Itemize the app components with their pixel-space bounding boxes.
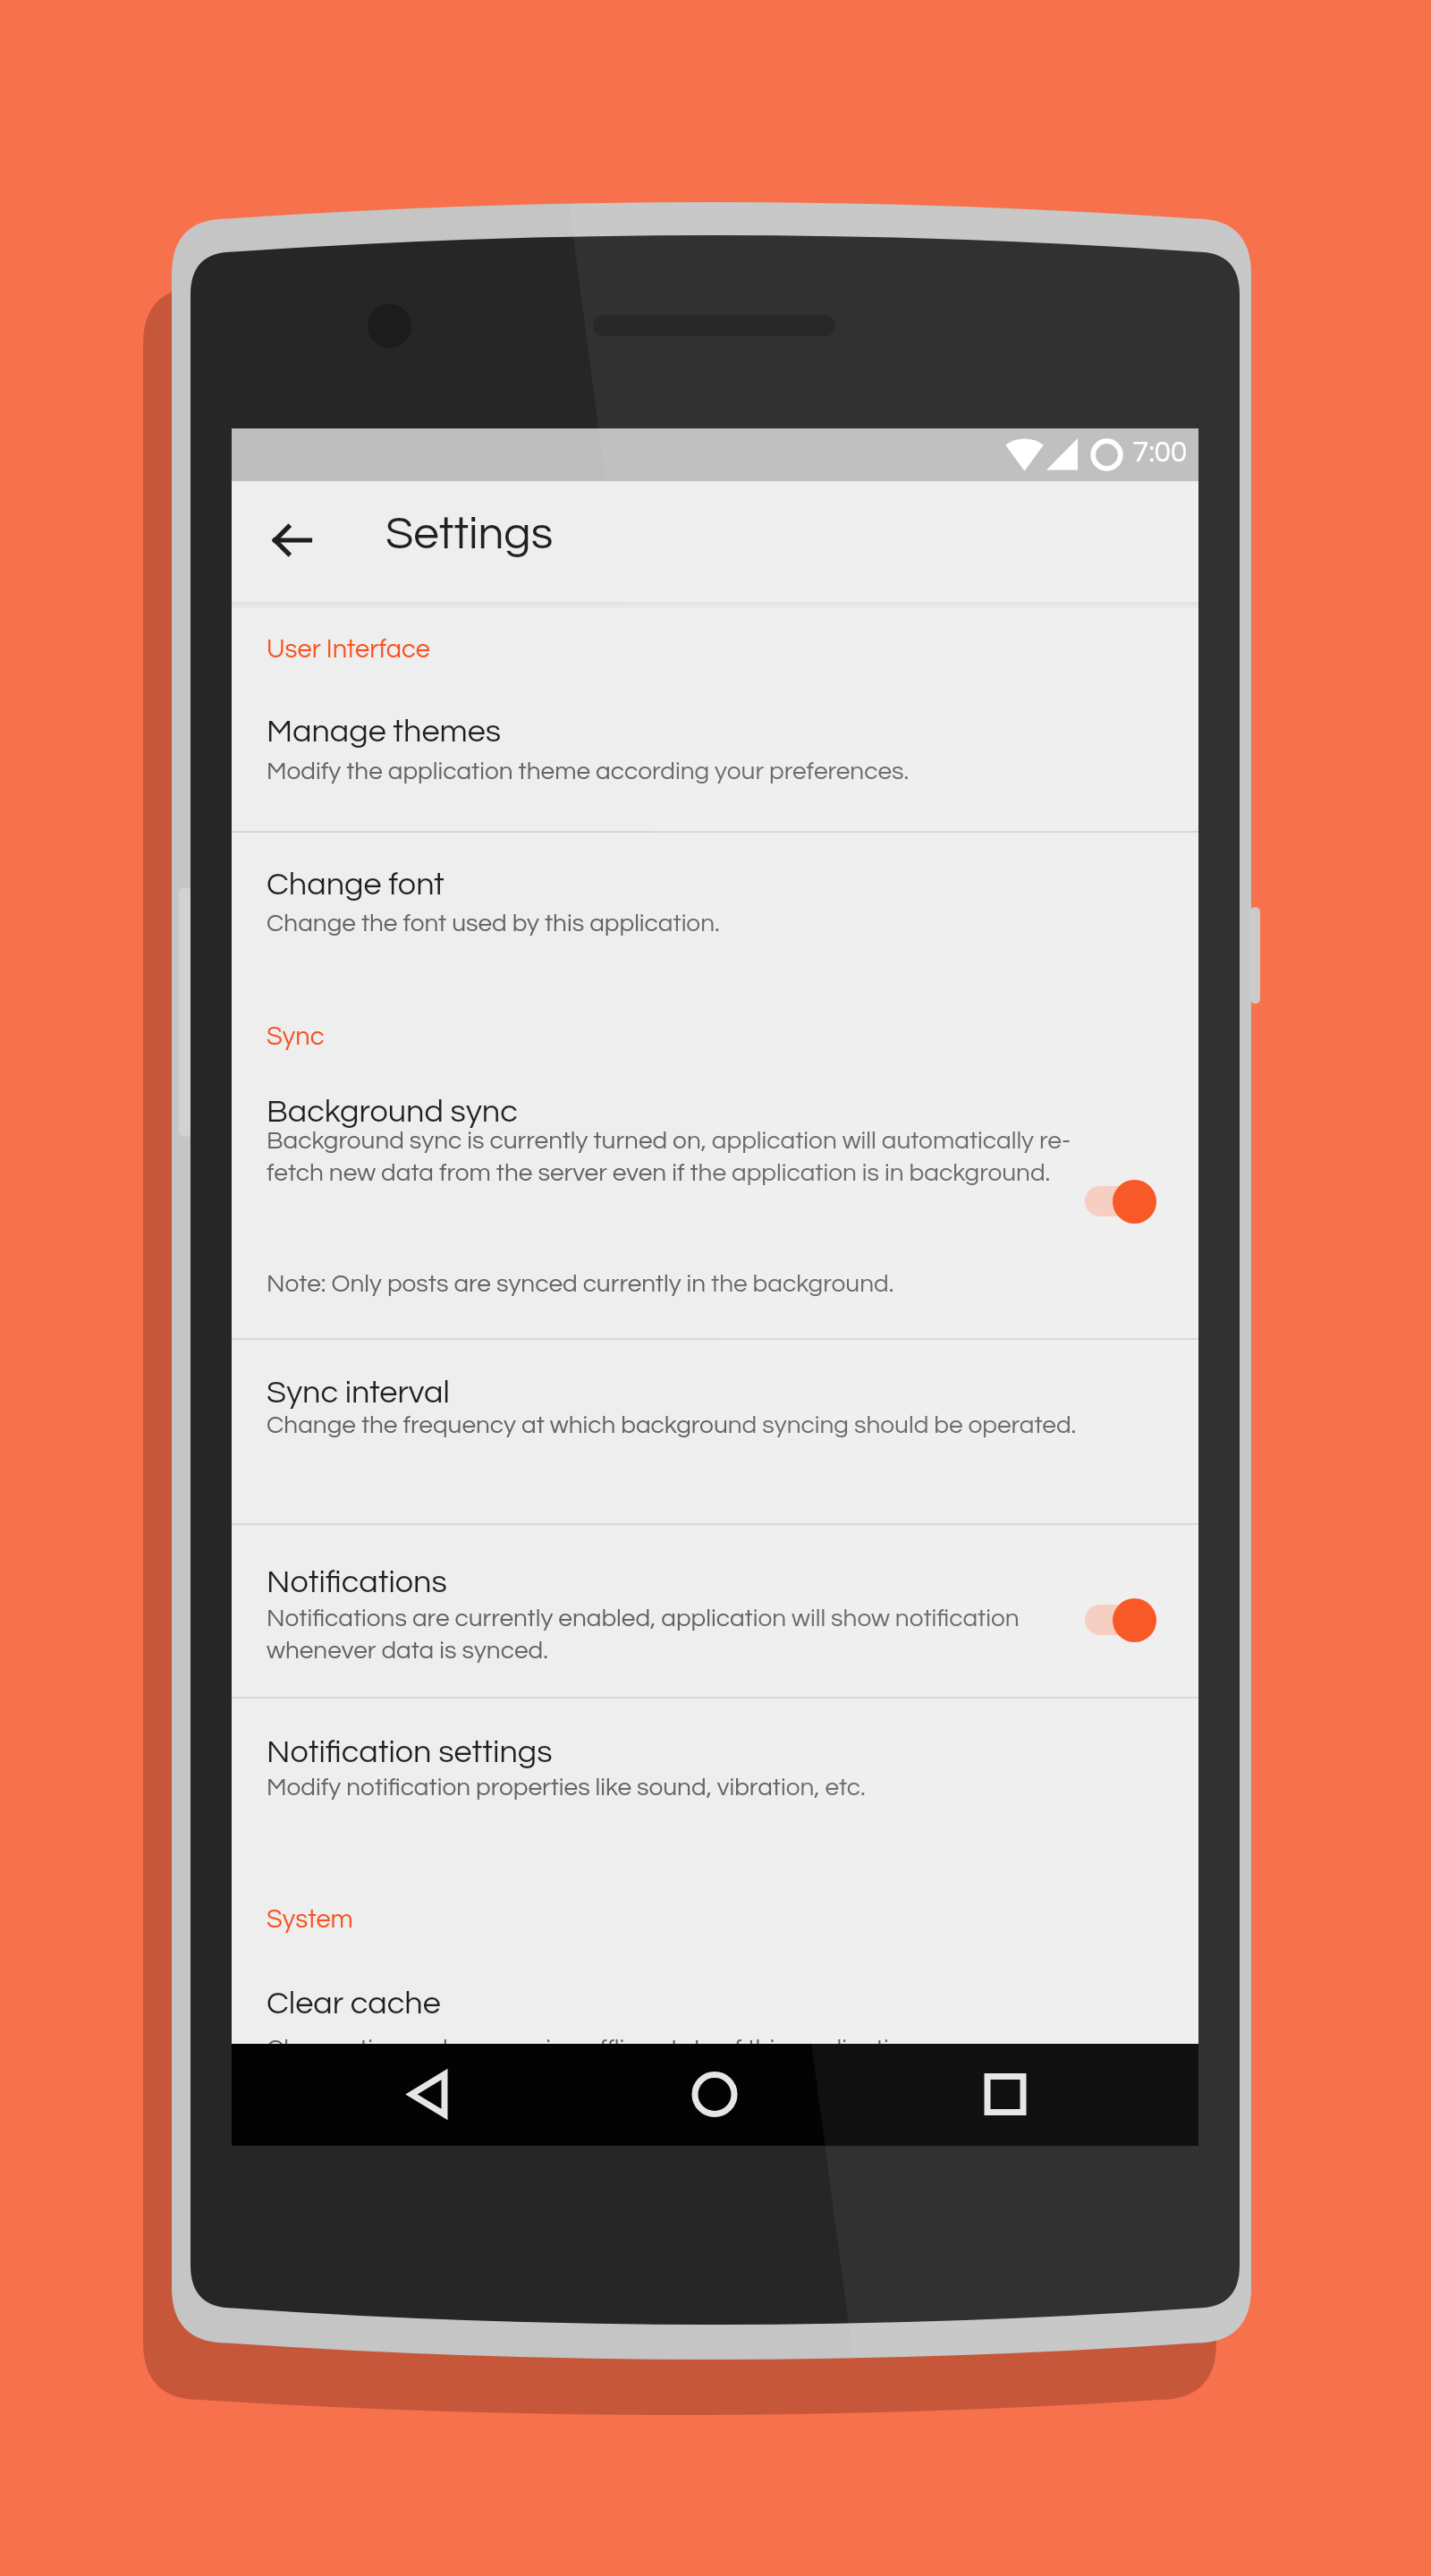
staticText: Modify notification properties like soun… bbox=[267, 1775, 866, 1801]
button[interactable]: Back bbox=[240, 492, 340, 592]
staticText: Sync interval bbox=[267, 1376, 450, 1409]
staticText: Clear cache bbox=[267, 1987, 441, 2020]
button[interactable] bbox=[232, 833, 1198, 976]
button[interactable] bbox=[232, 1699, 1198, 1851]
button[interactable] bbox=[232, 1962, 1198, 2105]
button[interactable] bbox=[232, 1340, 1198, 1523]
button[interactable]: Toggle bbox=[1085, 1169, 1167, 1235]
button[interactable]: User Interface bbox=[267, 636, 430, 663]
button[interactable]: Home bbox=[634, 2044, 795, 2146]
staticText: Notifications bbox=[267, 1565, 447, 1598]
button[interactable] bbox=[232, 1525, 1198, 1697]
staticText: Change font bbox=[267, 868, 445, 901]
button[interactable]: Toggle bbox=[1085, 1588, 1167, 1654]
staticText: Note: Only posts are synced currently in… bbox=[267, 1271, 894, 1297]
button[interactable]: Recents bbox=[924, 2044, 1085, 2146]
staticText: 7:00 bbox=[1132, 437, 1188, 468]
button[interactable]: Sync bbox=[267, 1023, 325, 1050]
staticText: Modify the application theme according y… bbox=[267, 758, 910, 784]
staticText: Settings bbox=[385, 511, 554, 558]
staticText: Background sync is currently turned on, … bbox=[267, 1128, 1071, 1186]
button[interactable] bbox=[232, 691, 1198, 831]
staticText: Notification settings bbox=[267, 1735, 553, 1768]
staticText: User Interface bbox=[267, 636, 430, 663]
button[interactable]: Back bbox=[346, 2044, 507, 2146]
staticText: Change the frequency at which background… bbox=[267, 1412, 1077, 1438]
button[interactable] bbox=[232, 1076, 1198, 1338]
staticText: Change the font used by this application… bbox=[267, 911, 720, 936]
staticText: Sync bbox=[267, 1023, 325, 1050]
staticText: Manage themes bbox=[267, 715, 502, 748]
staticText: System bbox=[267, 1906, 353, 1933]
staticText: Clear entire cache powering offline stat… bbox=[267, 2036, 923, 2062]
button[interactable]: System bbox=[267, 1906, 353, 1933]
staticText: Notifications are currently enabled, app… bbox=[267, 1606, 1071, 1664]
staticText: Background sync bbox=[267, 1095, 518, 1128]
